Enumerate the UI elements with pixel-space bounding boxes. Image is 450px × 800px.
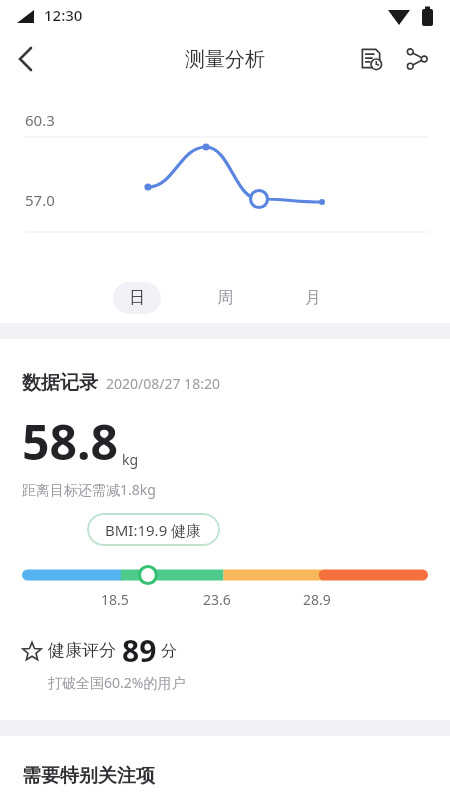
staticText: 需要特别关注项 [22,764,155,788]
button[interactable]: 月 [289,282,337,314]
staticText: 28.9 [303,590,331,609]
staticText: 打破全国60.2%的用户 [48,673,186,692]
staticText: 月 [305,288,321,308]
button[interactable]: Share [394,36,440,82]
staticText: 健康评分 [48,640,116,661]
staticText: 57.0 [25,190,55,210]
button[interactable]: Back [0,33,52,85]
staticText: 89 [122,630,157,671]
staticText: 58.8 [22,409,118,474]
staticText: 分 [161,641,177,661]
button[interactable]: History records [348,36,394,82]
staticText: 2020/08/27 18:20 [106,374,220,393]
staticText: 60.3 [25,110,55,130]
staticText: 周 [217,288,233,308]
staticText: 距离目标还需减1.8kg [22,480,156,499]
staticText: BMI:19.9 健康 [105,520,202,540]
staticText: 测量分析 [185,47,265,72]
button[interactable]: 日 [113,282,161,314]
button[interactable]: BMI:19.9 健康 [87,513,220,546]
staticText: 23.6 [203,590,231,609]
staticText: 12:30 [44,5,83,25]
staticText: 数据记录 [22,371,98,395]
staticText: 18.5 [101,590,129,609]
button[interactable]: 周 [201,282,249,314]
staticText: 日 [129,288,145,308]
staticText: kg [122,450,139,469]
